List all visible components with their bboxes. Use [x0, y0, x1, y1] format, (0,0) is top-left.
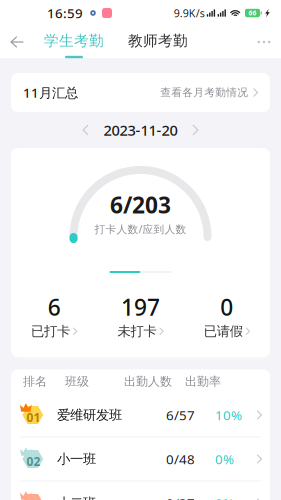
staticText: 0: [220, 292, 233, 322]
button[interactable]: 02: [11, 437, 270, 480]
staticText: 11月汇总: [23, 84, 78, 101]
button[interactable]: 01: [11, 393, 270, 436]
staticText: 排名: [23, 374, 47, 389]
staticText: 出勤人数: [124, 374, 172, 389]
staticText: 0/48: [166, 450, 195, 468]
staticText: 出勤率: [185, 374, 221, 389]
button[interactable]: 教师考勤: [128, 26, 188, 58]
button[interactable]: 学生考勤: [44, 26, 104, 58]
staticText: 小一班: [57, 451, 96, 467]
button[interactable]: 0: [184, 292, 270, 339]
staticText: 01: [26, 409, 40, 425]
button[interactable]: 197: [97, 292, 184, 339]
staticText: 教师考勤: [128, 32, 188, 50]
staticText: 小二班: [57, 495, 96, 500]
staticText: 学生考勤: [44, 32, 104, 50]
button[interactable]: Previous day: [63, 118, 107, 142]
staticText: 0%: [215, 494, 234, 500]
staticText: 197: [121, 292, 160, 322]
button[interactable]: 11月汇总: [11, 73, 270, 112]
staticText: 16:59: [47, 4, 83, 22]
staticText: 0%: [215, 450, 234, 468]
staticText: 6/203: [110, 190, 171, 220]
button[interactable]: Next day: [173, 118, 217, 142]
staticText: 10%: [215, 406, 242, 424]
staticText: 0/37: [166, 494, 195, 500]
button[interactable]: More: [247, 26, 281, 58]
staticText: 已请假: [204, 323, 243, 339]
staticText: 6/57: [166, 406, 195, 424]
staticText: 未打卡: [117, 323, 156, 339]
staticText: 已打卡: [31, 323, 70, 339]
staticText: 打卡人数/应到人数: [94, 222, 186, 236]
staticText: 查看各月考勤情况: [160, 86, 248, 99]
staticText: 2023-11-20: [103, 120, 177, 140]
button[interactable]: 03: [11, 481, 270, 500]
staticText: 爱维研发班: [57, 407, 122, 423]
staticText: 9.9K/s: [174, 6, 205, 20]
staticText: 班级: [65, 374, 89, 389]
button[interactable]: 6: [11, 292, 97, 339]
staticText: 66: [248, 9, 256, 17]
button[interactable]: Back: [0, 26, 34, 58]
staticText: 6: [48, 292, 61, 322]
staticText: 02: [26, 453, 40, 469]
